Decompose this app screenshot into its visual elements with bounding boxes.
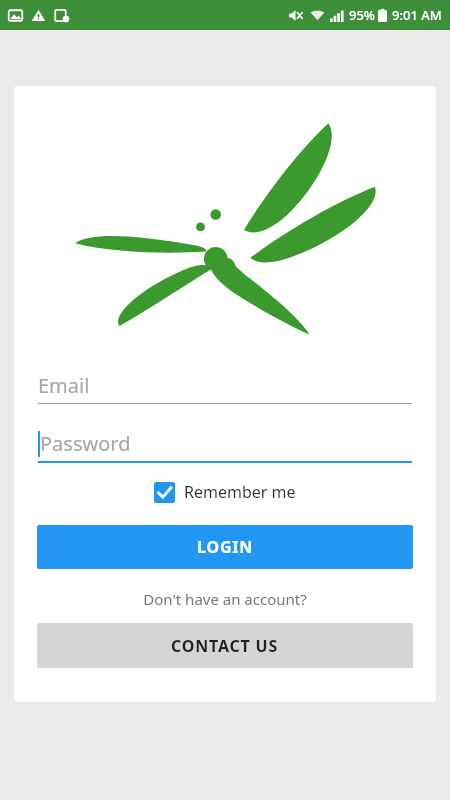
- staticText: 9:01 AM: [392, 6, 442, 24]
- button[interactable]: Email: [38, 372, 412, 404]
- staticText: Password: [40, 430, 131, 457]
- button[interactable]: Remember me: [154, 481, 296, 503]
- staticText: Don't have an account?: [14, 589, 436, 609]
- staticText: Remember me: [184, 481, 296, 503]
- staticText: LOGIN: [197, 536, 254, 558]
- staticText: Email: [38, 372, 90, 399]
- button[interactable]: LOGIN: [37, 525, 413, 569]
- button[interactable]: Password: [38, 430, 412, 463]
- staticText: CONTACT US: [171, 635, 279, 657]
- button[interactable]: CONTACT US: [37, 623, 413, 668]
- staticText: 95%: [349, 6, 375, 24]
